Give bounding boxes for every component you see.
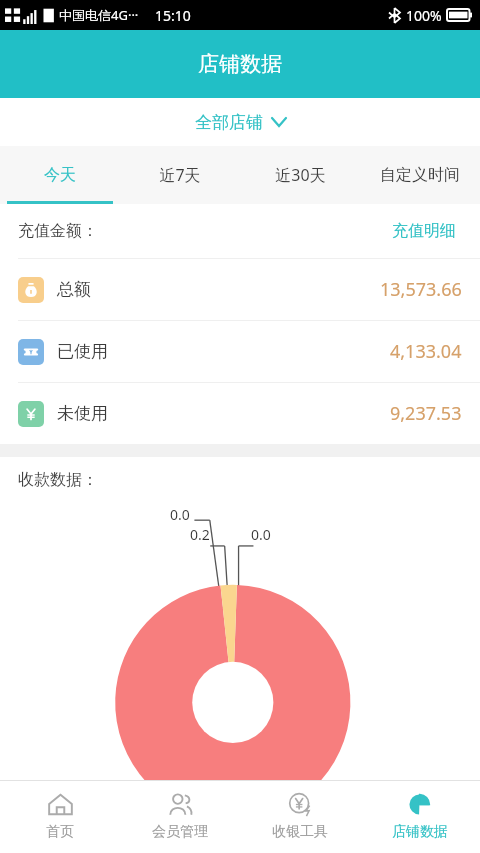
staticText: 近30天 [275,164,326,186]
staticText: 0.0 [170,505,190,524]
staticText: 13,573.66 [380,277,462,302]
staticText: 近7天 [159,164,201,186]
staticText: 店铺数据 [392,823,448,841]
staticText: 会员管理 [152,823,208,841]
staticText: 中国电信4G··· [59,6,139,24]
staticText: 自定义时间 [380,165,460,185]
button[interactable]: 未使用 [0,383,480,444]
button[interactable]: 首页 [0,781,120,853]
staticText: 充值金额： [18,221,98,241]
staticText: 今天 [44,165,76,185]
staticText: 总额 [57,279,91,300]
staticText: 首页 [46,823,74,841]
button[interactable]: 今天 [0,146,120,204]
staticText: 未使用 [57,403,108,424]
staticText: 充值明细 [392,221,456,241]
staticText: 15:10 [155,6,191,25]
button[interactable]: 店铺数据 [360,781,480,853]
staticText: 4,133.04 [390,339,462,364]
staticText: 已使用 [57,341,108,362]
staticText: 100% [406,6,442,25]
staticText: 9,237.53 [390,401,462,426]
button[interactable]: 会员管理 [120,781,240,853]
button[interactable]: 充值明细 [386,215,462,247]
button[interactable]: 近7天 [120,146,240,204]
button[interactable]: 近30天 [240,146,360,204]
staticText: 0.2 [190,525,210,544]
staticText: 0.0 [251,525,271,544]
staticText: 店铺数据 [198,51,282,77]
staticText: 收款数据： [18,470,98,490]
button[interactable]: 自定义时间 [360,146,480,204]
button[interactable]: 收银工具 [240,781,360,853]
staticText: 收银工具 [272,823,328,841]
button[interactable]: 全部店铺 [0,98,480,146]
button[interactable]: 总额 [0,259,480,320]
staticText: 全部店铺 [195,112,263,133]
button[interactable]: 已使用 [0,321,480,382]
